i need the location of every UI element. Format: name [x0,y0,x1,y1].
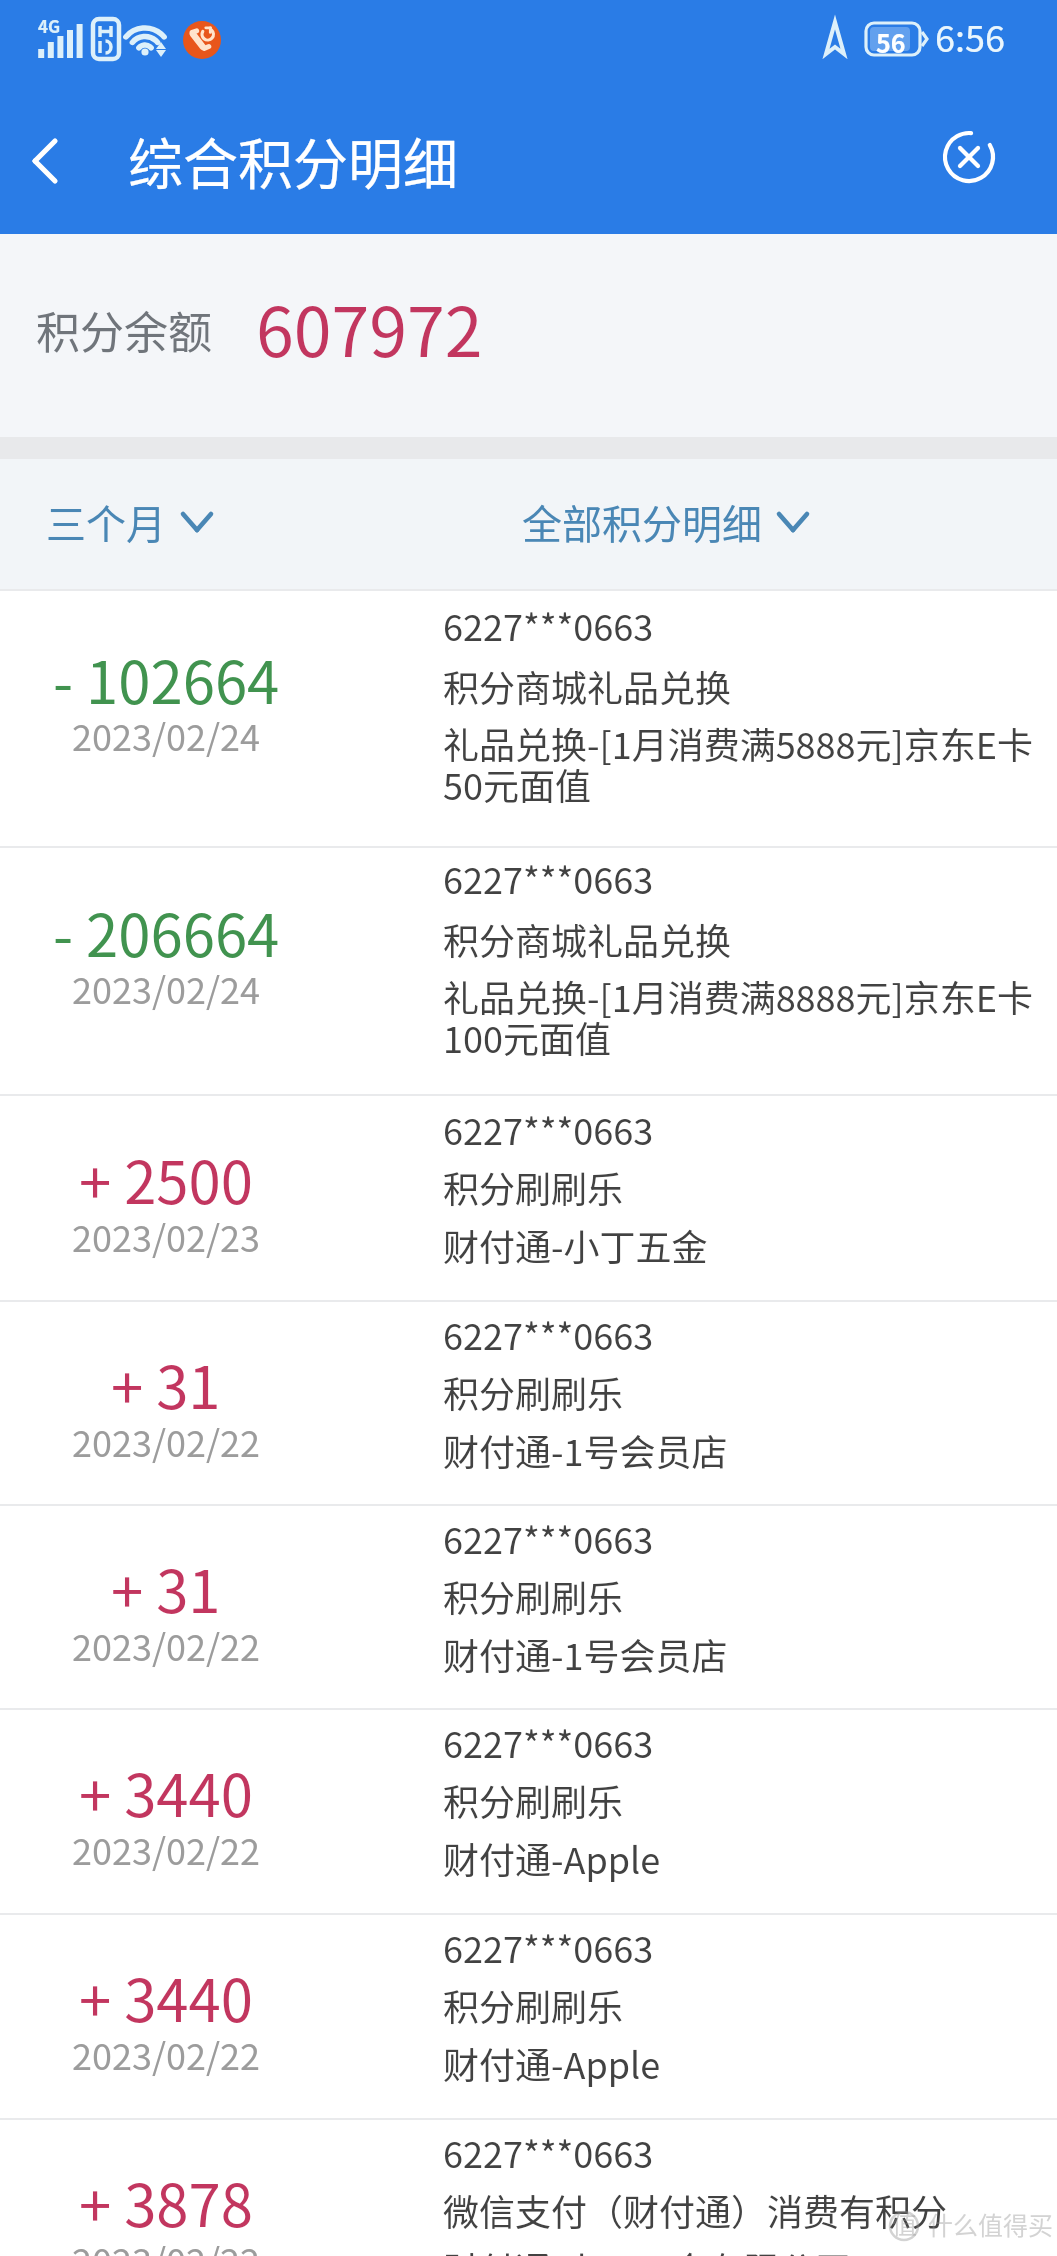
staticText: - 206664 [53,890,280,974]
button[interactable]: + 3440 [0,1710,1057,1913]
button[interactable]: - 102664 [0,591,1057,846]
staticText: 4G [38,13,61,38]
staticText: 2023/02/24 [72,709,261,761]
staticText: 积分刷刷乐 [443,1161,624,1213]
button[interactable]: 全部积分明细 [522,493,810,551]
staticText: 三个月 [46,493,166,551]
staticText: 100元面值 [443,1011,611,1063]
staticText: 积分刷刷乐 [443,1979,624,2031]
staticText: 2023/02/23 [72,1210,261,1262]
staticText: 礼品兑换-[1月消费满5888元]京东E卡 [443,717,1033,769]
staticText: 什么值得买 [928,2206,1054,2242]
staticText: - 102664 [53,637,280,721]
staticText: 值 [892,2205,918,2241]
staticText: 607972 [256,278,483,376]
staticText: + 3440 [79,1750,253,1834]
staticText: 6227***0663 [443,1716,654,1768]
staticText: 6227***0663 [443,599,654,651]
staticText: 财付通-Apple [443,1832,661,1884]
button[interactable]: Back [0,82,110,234]
staticText: 56 [876,24,906,60]
staticText: 财付通-Apple [443,2037,661,2089]
staticText: 财付通-1号会员店 [443,1628,728,1680]
staticText: 6227***0663 [443,1308,654,1360]
staticText: 50元面值 [443,758,591,810]
staticText: 积分刷刷乐 [443,1366,624,1418]
button[interactable]: - 206664 [0,848,1057,1094]
staticText: 2023/02/22 [72,1415,261,1467]
staticText: 全部积分明细 [522,493,762,551]
staticText: 礼品兑换-[1月消费满8888元]京东E卡 [443,970,1033,1022]
staticText: 2023/02/22 [72,1823,261,1875]
staticText: + 2500 [79,1137,253,1221]
staticText: 积分商城礼品兑换 [443,660,732,712]
button[interactable]: + 31 [0,1506,1057,1708]
button[interactable]: + 3440 [0,1915,1057,2118]
staticText: 积分余额 [36,298,212,362]
staticText: + 3878 [79,2160,253,2244]
staticText: 财付通-小丁五金 [443,1219,708,1271]
staticText: 6227***0663 [443,1103,654,1155]
staticText: 财付通-1号会员店 [443,1424,728,1476]
staticText: 积分刷刷乐 [443,1774,624,1826]
staticText: 微信支付（财付通）消费有积分 [443,2184,948,2236]
staticText: 2023/02/22 [72,1619,261,1671]
staticText: 财付通-小丁五金有限公司 [443,2242,852,2256]
staticText: 2023/02/22 [72,2028,261,2080]
staticText: 6227***0663 [443,1512,654,1564]
staticText: 6227***0663 [443,852,654,904]
staticText: 积分商城礼品兑换 [443,913,732,965]
staticText: 6227***0663 [443,1921,654,1973]
staticText: + 3440 [79,1955,253,2039]
staticText: 综合积分明细 [128,120,459,200]
staticText: 6:56 [935,10,1005,62]
staticText: 积分刷刷乐 [443,1570,624,1622]
staticText: 6227***0663 [443,2126,654,2178]
staticText: 2023/02/24 [72,962,261,1014]
staticText: 2023/02/22 [72,2233,261,2256]
button[interactable]: + 3878 [0,2120,1057,2256]
button[interactable]: + 31 [0,1302,1057,1504]
staticText: + 31 [111,1546,221,1630]
button[interactable]: Close [910,82,1030,234]
button[interactable]: 三个月 [46,493,214,551]
staticText: + 31 [111,1342,221,1426]
button[interactable]: + 2500 [0,1096,1057,1300]
